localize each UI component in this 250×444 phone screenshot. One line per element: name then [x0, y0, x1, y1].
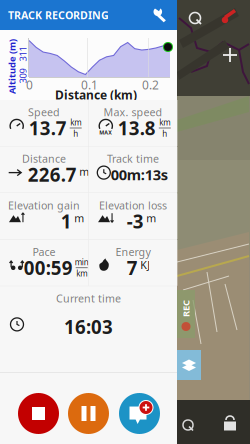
- staticText: h: [73, 128, 78, 139]
- staticText: h: [162, 128, 167, 139]
- staticText: 0.2: [142, 77, 159, 93]
- button[interactable]: Lock screen: [221, 412, 239, 432]
- staticText: Pace: [32, 245, 55, 259]
- staticText: 00m:13s: [111, 165, 168, 184]
- staticText: 13.7: [29, 116, 67, 140]
- staticText: Max. speed: [103, 105, 162, 119]
- staticText: min: [75, 257, 89, 267]
- staticText: REC: [177, 302, 194, 315]
- staticText: 1: [61, 209, 72, 234]
- button[interactable]: Add waypoint: [119, 393, 160, 434]
- staticText: -3: [127, 209, 144, 234]
- button[interactable]: Pause recording: [68, 393, 109, 434]
- staticText: m: [146, 211, 156, 225]
- button[interactable]: Stop recording: [18, 393, 59, 434]
- staticText: 16:03: [64, 314, 113, 339]
- staticText: Altitude (m): [0, 60, 39, 73]
- staticText: 7: [127, 255, 138, 280]
- button[interactable]: Map layers: [177, 350, 201, 380]
- staticText: 226.7: [28, 162, 77, 187]
- staticText: m: [74, 211, 84, 225]
- staticText: Elevation loss: [99, 198, 167, 212]
- button[interactable]: Zoom in: [221, 46, 241, 66]
- staticText: 0: [26, 77, 33, 93]
- staticText: 0.1: [81, 77, 98, 93]
- staticText: km: [70, 117, 81, 128]
- staticText: km: [159, 117, 170, 128]
- staticText: Distance: [22, 152, 66, 166]
- staticText: 13.8: [118, 116, 156, 140]
- staticText: Distance (km): [55, 87, 137, 103]
- staticText: 309: [15, 70, 30, 82]
- staticText: Elevation gain: [8, 198, 80, 212]
- staticText: Current time: [56, 291, 121, 306]
- staticText: MAX: [99, 129, 112, 136]
- button[interactable]: Search map: [177, 414, 199, 436]
- button[interactable]: Settings: [148, 0, 172, 30]
- staticText: Speed: [28, 105, 60, 119]
- staticText: Track time: [107, 152, 159, 166]
- staticText: KJ: [140, 258, 150, 272]
- staticText: 311: [15, 48, 30, 60]
- staticText: m: [79, 164, 89, 179]
- button[interactable]: Search: [183, 6, 207, 30]
- staticText: Energy: [115, 245, 150, 259]
- staticText: 00:59: [24, 255, 73, 280]
- staticText: TRACK RECORDING: [8, 8, 109, 22]
- staticText: km: [76, 268, 87, 279]
